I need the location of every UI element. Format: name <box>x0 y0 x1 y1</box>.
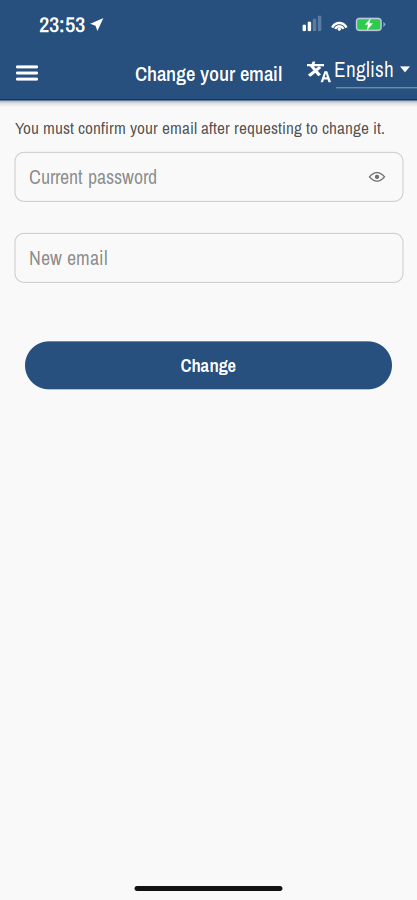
staticText: New email <box>29 244 108 271</box>
staticText: English <box>334 55 394 84</box>
staticText: Change <box>180 353 236 378</box>
button[interactable]: Show password <box>364 164 390 190</box>
button[interactable]: English <box>307 52 417 96</box>
button[interactable]: Change <box>25 341 392 389</box>
button[interactable]: Open menu <box>5 51 49 95</box>
staticText: Change your email <box>135 60 282 87</box>
staticText: 23:53 <box>39 9 85 39</box>
staticText: You must confirm your email after reques… <box>15 116 385 139</box>
staticText: Current password <box>29 163 157 190</box>
